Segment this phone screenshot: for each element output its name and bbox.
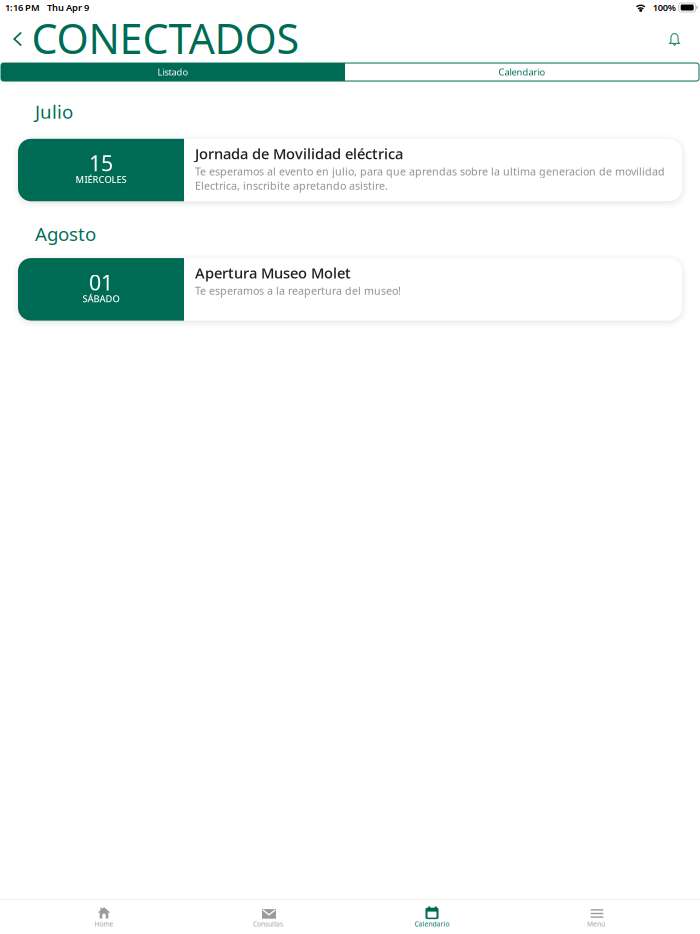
staticText: Calendario	[414, 919, 449, 928]
button[interactable]: Home	[22, 898, 186, 934]
button[interactable]: Calendario	[345, 63, 699, 81]
button[interactable]: Notifications	[657, 20, 696, 58]
button[interactable]: Back	[0, 22, 31, 55]
button[interactable]: Consultas	[186, 898, 350, 934]
staticText: Thu Apr 9	[47, 1, 89, 14]
button[interactable]: 15	[18, 139, 682, 201]
staticText: Te esperamos a la reapertura del museo!	[195, 284, 401, 298]
staticText: Listado	[157, 66, 188, 78]
staticText: 1:16 PM	[5, 1, 40, 14]
staticText: 01	[89, 268, 113, 296]
staticText: 15	[89, 149, 113, 177]
staticText: MIÉRCOLES	[75, 173, 126, 185]
button[interactable]: Menú	[514, 898, 678, 934]
staticText: Home	[94, 919, 113, 928]
staticText: SÁBADO	[82, 292, 119, 305]
staticText: Agosto	[35, 221, 96, 246]
staticText: CONECTADOS	[31, 11, 299, 65]
staticText: Consultas	[253, 919, 283, 928]
staticText: Jornada de Movilidad eléctrica	[195, 144, 403, 163]
button[interactable]: Calendario	[350, 898, 514, 934]
staticText: Menú	[587, 919, 605, 928]
staticText: 100%	[653, 1, 676, 14]
button[interactable]: Listado	[1, 63, 345, 81]
staticText: Te esperamos al evento en julio, para qu…	[195, 164, 665, 193]
staticText: Julio	[35, 99, 73, 124]
staticText: Apertura Museo Molet	[195, 263, 351, 283]
staticText: Calendario	[498, 66, 545, 78]
button[interactable]: 01	[18, 258, 682, 321]
